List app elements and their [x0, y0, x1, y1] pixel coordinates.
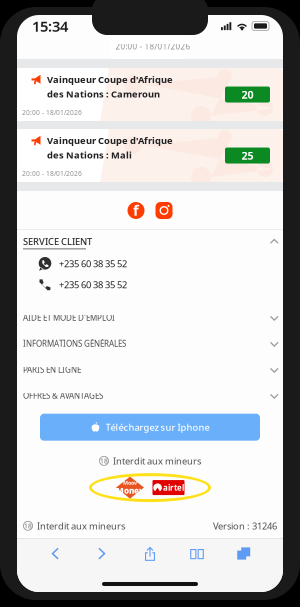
- staticText: 18: [100, 456, 108, 465]
- staticText: des Nations : Mali: [47, 149, 132, 161]
- button[interactable]: +235 60 38 35 52: [38, 257, 127, 271]
- button[interactable]: Téléchargez sur Iphone: [40, 414, 260, 441]
- button[interactable]: Tabs: [236, 546, 252, 562]
- staticText: Interdit aux mineurs: [37, 520, 125, 532]
- staticText: Vainqueur Coupe d'Afrique: [47, 73, 173, 86]
- staticText: 25: [241, 148, 253, 163]
- staticText: Interdit aux mineurs: [113, 455, 201, 467]
- staticText: AIDE ET MODE D'EMPLOI: [23, 312, 115, 323]
- button[interactable]: Airtel Money: [152, 480, 184, 495]
- button[interactable]: 25: [225, 147, 270, 163]
- staticText: Money: [116, 485, 144, 496]
- staticText: airtel: [163, 482, 184, 493]
- button[interactable]: OFFRES & AVANTAGES: [17, 383, 283, 409]
- button[interactable]: Forward: [95, 546, 111, 562]
- staticText: Version : 31246: [213, 520, 277, 532]
- button[interactable]: AIDE ET MODE D'EMPLOI: [17, 305, 283, 331]
- staticText: 20:00 - 18/01/2026: [22, 108, 82, 117]
- staticText: SERVICE CLIENT: [23, 235, 92, 248]
- staticText: Téléchargez sur Iphone: [105, 421, 209, 433]
- staticText: 15:34: [32, 16, 68, 36]
- staticText: 18: [24, 521, 32, 530]
- staticText: Vainqueur Coupe d'Afrique: [47, 134, 173, 147]
- staticText: Moov: [123, 479, 137, 486]
- staticText: des Nations : Cameroun: [47, 88, 160, 100]
- staticText: +235 60 38 35 52: [59, 257, 127, 270]
- button[interactable]: Bookmarks: [189, 546, 205, 562]
- button[interactable]: Share: [142, 546, 158, 562]
- staticText: INFORMATIONS GÉNÉRALES: [23, 338, 126, 349]
- staticText: +235 60 38 35 52: [59, 278, 127, 291]
- staticText: 20:00 - 18/01/2026: [115, 41, 190, 52]
- staticText: OFFRES & AVANTAGES: [23, 390, 103, 401]
- button[interactable]: INFORMATIONS GÉNÉRALES: [17, 331, 283, 357]
- button[interactable]: +235 60 38 35 52: [38, 278, 127, 292]
- staticText: 20:00 - 18/01/2026: [22, 169, 82, 178]
- staticText: f: [133, 200, 139, 220]
- button[interactable]: PARIS EN LIGNE: [17, 357, 283, 383]
- staticText: PARIS EN LIGNE: [23, 364, 81, 375]
- button[interactable]: Facebook: [127, 202, 144, 219]
- button[interactable]: SERVICE CLIENT: [17, 232, 283, 253]
- staticText: 20: [241, 87, 253, 102]
- button[interactable]: Back: [48, 546, 64, 562]
- button[interactable]: Moov Money: [115, 476, 144, 499]
- button[interactable]: 20: [225, 86, 270, 102]
- button[interactable]: Instagram: [155, 202, 172, 219]
